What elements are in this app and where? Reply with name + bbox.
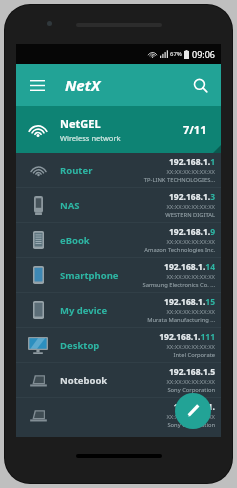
button[interactable]: Open navigation drawer <box>22 70 52 100</box>
staticText: Wireless network <box>60 133 121 143</box>
button[interactable]: Edit <box>175 393 211 429</box>
staticText: Intel Corporate <box>173 351 215 359</box>
staticText: 192.168.1.9 <box>168 226 215 238</box>
staticText: My device <box>60 304 147 317</box>
button[interactable]: Smartphone <box>16 258 221 293</box>
staticText: 09:06 <box>192 48 216 60</box>
staticText: XX:XX:XX:XX:XX:XX <box>166 168 215 176</box>
staticText: NAS <box>60 199 165 212</box>
staticText: eBook <box>60 234 144 247</box>
staticText: Murata Manufacturing ... <box>147 316 215 324</box>
button[interactable]: Search <box>185 70 215 100</box>
staticText: XX:XX:XX:XX:XX:XX <box>166 308 215 316</box>
staticText: XX:XX:XX:XX:XX:XX <box>166 238 215 246</box>
staticText: Notebook <box>60 374 166 387</box>
staticText: 192.168.1.5 <box>168 366 215 378</box>
button[interactable]: NAS <box>16 188 221 223</box>
staticText: NetGEL <box>60 116 101 131</box>
staticText: 7/11 <box>183 122 207 137</box>
button[interactable]: 192.168.1. <box>16 398 221 432</box>
staticText: NetX <box>65 75 101 95</box>
staticText: Sony Corporation <box>167 421 215 429</box>
button[interactable]: Router <box>16 153 221 188</box>
staticText: XX:XX:XX:XX:XX:XX <box>166 343 215 351</box>
staticText: Amazon Technologies Inc. <box>144 246 215 254</box>
button[interactable]: NetGEL <box>16 106 221 153</box>
button[interactable]: Notebook <box>16 363 221 398</box>
staticText: 192.168.1.14 <box>164 261 215 273</box>
staticText: XX:XX:XX:XX:XX:XX <box>166 378 215 386</box>
staticText: 67% <box>170 50 182 58</box>
staticText: Samsung Electronics Co. ... <box>142 281 215 289</box>
staticText: 192.168.1.1 <box>168 156 215 168</box>
staticText: 192.168.1.3 <box>168 191 215 203</box>
staticText: XX:XX:XX:XX:XX:XX <box>166 273 215 281</box>
staticText: 192.168.1.111 <box>159 331 215 343</box>
staticText: XX:XX:XX:XX:XX:XX <box>166 413 215 421</box>
staticText: Sony Corporation <box>167 386 215 394</box>
button[interactable]: eBook <box>16 223 221 258</box>
staticText: TP-LINK TECHNOLOGIES... <box>143 176 215 184</box>
button[interactable]: My device <box>16 293 221 328</box>
button[interactable]: Desktop <box>16 328 221 363</box>
staticText: WESTERN DIGITAL <box>165 211 215 219</box>
staticText: Desktop <box>60 339 159 352</box>
staticText: 192.168.1.15 <box>164 296 215 308</box>
staticText: Router <box>60 164 143 177</box>
staticText: XX:XX:XX:XX:XX:XX <box>166 203 215 211</box>
staticText: 192.168.1. <box>173 401 215 413</box>
staticText: Smartphone <box>60 269 142 282</box>
